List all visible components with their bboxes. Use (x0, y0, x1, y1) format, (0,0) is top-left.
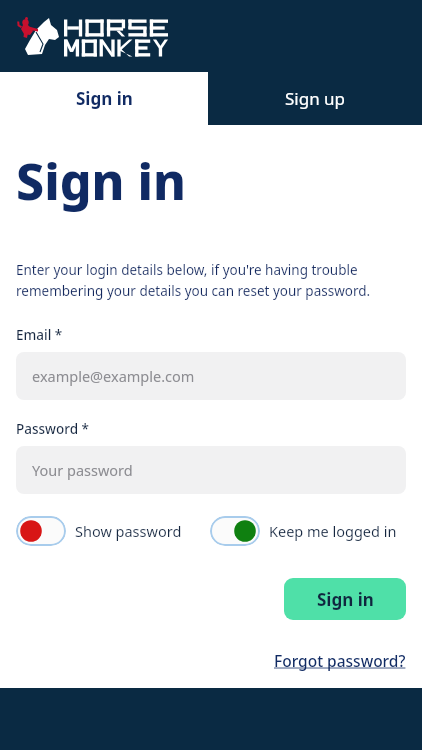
staticText: Password * (16, 420, 89, 438)
staticText: Your password (32, 460, 133, 480)
staticText: Forgot password? (274, 650, 406, 671)
staticText: Keep me logged in (269, 521, 397, 541)
button[interactable]: Your password (16, 446, 406, 494)
button[interactable]: Sign in (0, 72, 208, 125)
button[interactable]: Keep me logged in (210, 512, 397, 550)
button[interactable]: Sign in (284, 578, 406, 620)
staticText: Show password (75, 521, 182, 541)
button[interactable]: Forgot password? (274, 648, 406, 673)
staticText: Enter your login details below, if you'r… (16, 261, 406, 300)
button[interactable]: example@example.com (16, 352, 406, 400)
staticText: Sign in (76, 87, 133, 110)
button[interactable]: Show password (16, 512, 182, 550)
staticText: Sign in (317, 588, 374, 611)
other: Horse Monkey logo (16, 14, 168, 62)
staticText: Email * (16, 326, 63, 344)
staticText: Sign up (285, 87, 346, 110)
button[interactable]: Sign up (208, 72, 422, 125)
staticText: example@example.com (32, 366, 195, 386)
staticText: Sign in (16, 147, 186, 215)
